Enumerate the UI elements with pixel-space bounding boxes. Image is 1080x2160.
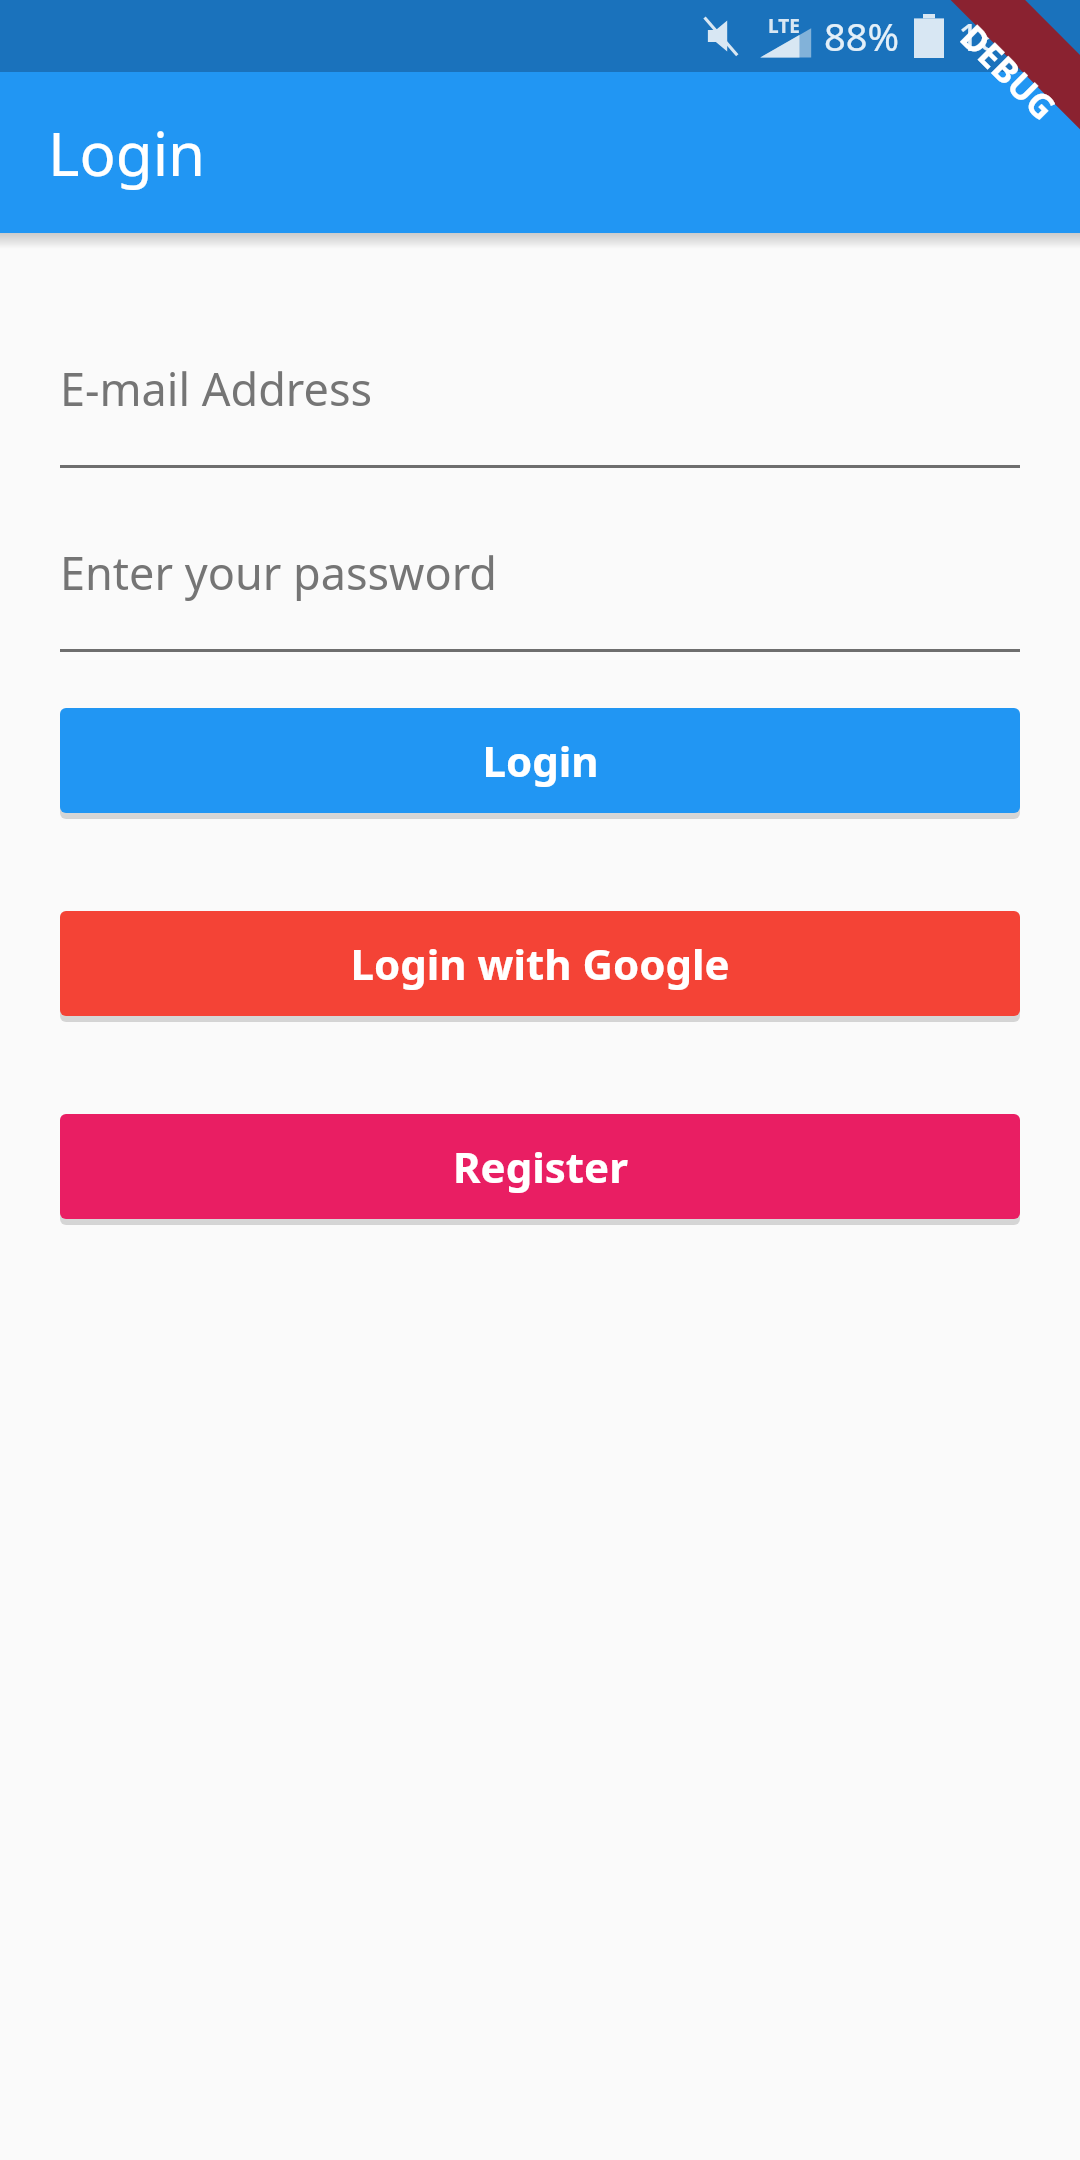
button[interactable]: Register xyxy=(60,1114,1020,1219)
button[interactable]: Login xyxy=(60,708,1020,813)
staticText: Login xyxy=(482,732,599,789)
staticText: Enter your password xyxy=(60,542,497,603)
staticText: 88% xyxy=(824,10,900,62)
other: LTE signal xyxy=(758,13,814,59)
staticText: E-mail Address xyxy=(60,358,373,419)
staticText: LTE xyxy=(768,13,800,39)
staticText: Login xyxy=(48,112,206,194)
staticText: Login with Google xyxy=(350,935,730,992)
staticText: Register xyxy=(453,1138,628,1195)
other: Silent mode xyxy=(702,15,744,57)
staticText: DEBUG xyxy=(951,14,1066,130)
staticText: 18:42 xyxy=(958,10,1056,62)
button[interactable]: E-mail Address xyxy=(60,358,1020,468)
button[interactable]: Login with Google xyxy=(60,911,1020,1016)
other: Battery xyxy=(914,14,944,58)
button[interactable]: Enter your password xyxy=(60,542,1020,652)
